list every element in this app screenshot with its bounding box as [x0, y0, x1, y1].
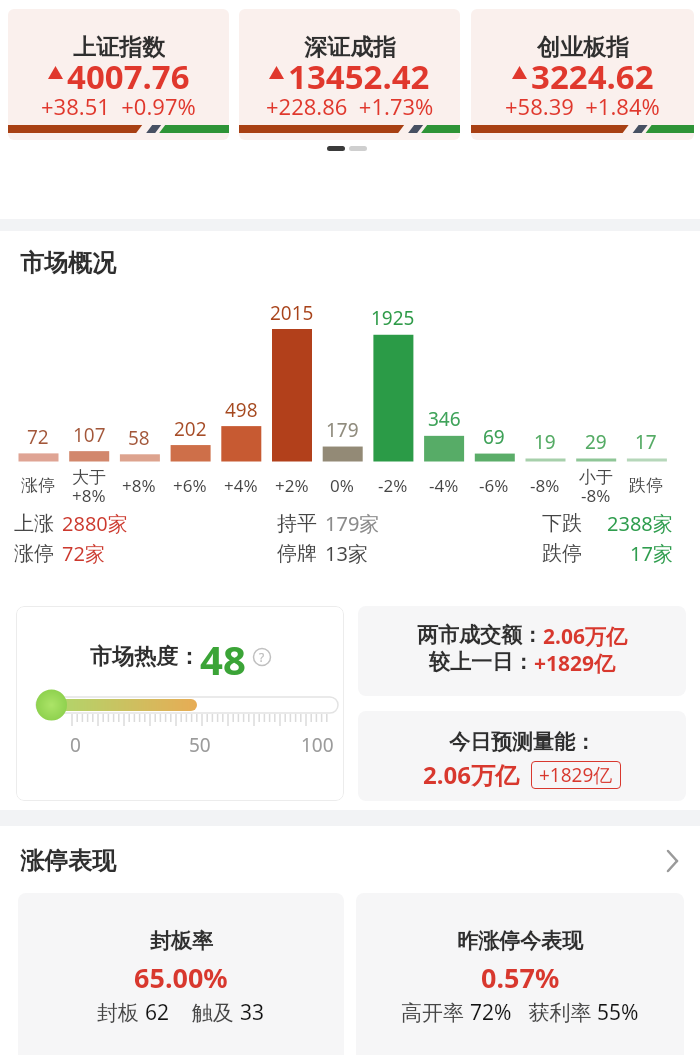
staticText: +228.86 +1.73% [266, 91, 434, 119]
staticText: 下跌 [542, 511, 582, 536]
staticText: 498 [225, 397, 258, 423]
staticText: 0.57% [481, 959, 560, 991]
staticText: 高开率 [401, 998, 470, 1027]
staticText: -8% [530, 474, 560, 497]
staticText: +2% [275, 474, 309, 497]
staticText: 72家 [62, 540, 105, 567]
button[interactable]: ? [253, 648, 271, 666]
button[interactable]: 昨涨停今表现 [356, 893, 684, 1055]
button[interactable]: 深证成指 [239, 9, 460, 140]
staticText: 获利率 [512, 998, 597, 1027]
staticText: +6% [173, 474, 207, 497]
staticText: 72% [470, 998, 512, 1027]
staticText: 小于 [579, 467, 613, 488]
staticText: 4007.76 [67, 54, 190, 90]
staticText: 13452.42 [288, 54, 430, 90]
staticText: 346 [428, 406, 461, 432]
staticText: 72 [27, 424, 49, 450]
staticText: +58.39 +1.84% [505, 91, 660, 119]
staticText: 29 [585, 429, 607, 455]
button[interactable]: 市场热度： [16, 606, 344, 801]
staticText: 涨停 [14, 541, 54, 566]
staticText: 涨停 [21, 475, 55, 496]
staticText: 69 [483, 424, 505, 450]
staticText: 2.06万亿 [543, 622, 627, 651]
staticText: 107 [73, 422, 106, 448]
staticText: 0% [330, 474, 354, 497]
staticText: -4% [429, 474, 459, 497]
staticText: 58 [128, 425, 150, 451]
staticText: +38.51 +0.97% [41, 91, 196, 119]
button[interactable]: 创业板指 [471, 9, 694, 140]
staticText: 跌停 [542, 541, 582, 566]
staticText: 179 [326, 417, 359, 443]
button[interactable] [0, 836, 700, 886]
staticText: 50 [189, 732, 211, 758]
staticText: 封板 [97, 998, 145, 1027]
staticText: 触及 [170, 998, 240, 1027]
staticText: 48 [200, 632, 246, 682]
staticText: +8% [72, 484, 106, 507]
staticText: 较上一日： [429, 649, 534, 675]
staticText: 1925 [371, 305, 415, 331]
staticText: -2% [378, 474, 408, 497]
staticText: 市场热度： [90, 643, 200, 671]
staticText: 持平 [277, 511, 317, 536]
staticText: 2.06万亿 [423, 758, 519, 791]
staticText: 17 [635, 429, 657, 455]
staticText: 大于 [72, 467, 106, 488]
staticText: 跌停 [629, 475, 663, 496]
button[interactable]: 两市成交额： [358, 606, 686, 696]
staticText: 2880家 [62, 510, 128, 537]
staticText: +1829亿 [534, 649, 616, 678]
button[interactable]: 上证指数 [8, 9, 229, 140]
staticText: 55% [597, 998, 639, 1027]
staticText: +4% [224, 474, 258, 497]
staticText: +1829亿 [539, 762, 613, 788]
staticText: 17家 [630, 540, 673, 567]
staticText: 上证指数 [73, 33, 165, 61]
staticText: 0 [70, 732, 81, 758]
staticText: 3224.62 [531, 54, 654, 90]
staticText: 涨停表现 [20, 846, 116, 876]
staticText: 13家 [325, 540, 368, 567]
staticText: 100 [301, 732, 334, 758]
staticText: 179家 [325, 510, 380, 537]
staticText: 市场概况 [20, 248, 116, 278]
staticText: 封板率 [150, 928, 213, 954]
staticText: 65.00% [134, 959, 228, 991]
staticText: -6% [479, 474, 509, 497]
staticText: 2015 [270, 300, 314, 326]
staticText: 今日预测量能： [449, 729, 596, 755]
staticText: 33 [240, 998, 265, 1027]
staticText: 深证成指 [304, 33, 396, 61]
staticText: 62 [145, 998, 170, 1027]
staticText: 两市成交额： [417, 622, 543, 648]
staticText: +8% [122, 474, 156, 497]
staticText: 2388家 [607, 510, 673, 537]
staticText: 上涨 [14, 511, 54, 536]
staticText: ? [259, 649, 265, 665]
staticText: 昨涨停今表现 [457, 928, 583, 954]
staticText: 创业板指 [537, 33, 629, 61]
button[interactable]: 今日预测量能： [358, 711, 686, 801]
staticText: -8% [581, 484, 611, 507]
staticText: 202 [174, 416, 207, 442]
button[interactable]: 封板率 [18, 893, 344, 1055]
staticText: 19 [534, 429, 556, 455]
staticText: 停牌 [277, 541, 317, 566]
